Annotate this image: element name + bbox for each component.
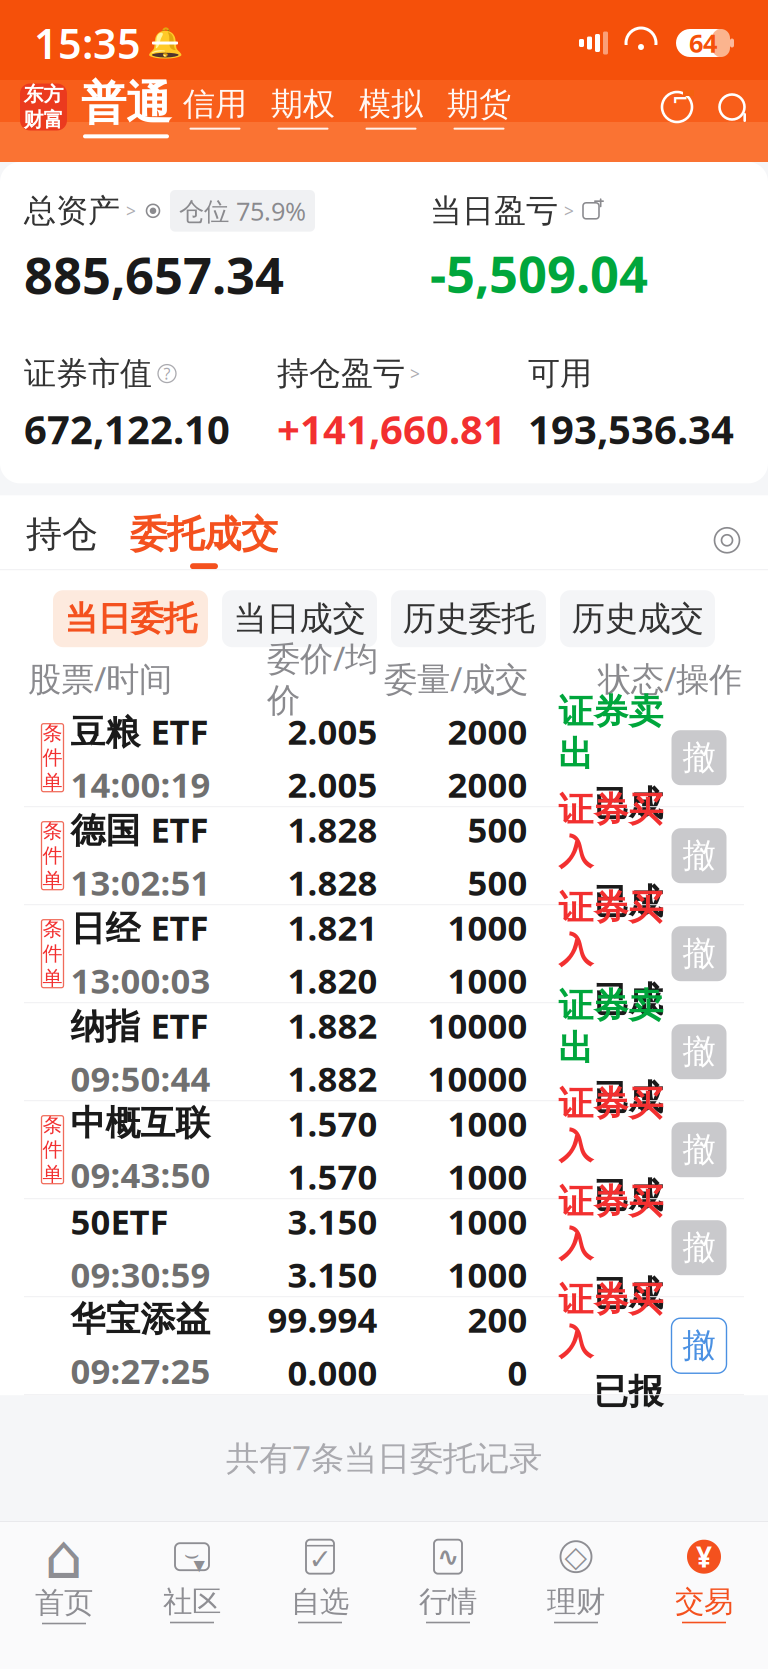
staticText: 09:30:59 bbox=[70, 1251, 210, 1297]
button[interactable]: 撤单 bbox=[671, 730, 726, 785]
staticText: 期权 bbox=[271, 84, 335, 124]
button[interactable]: Hide balance bbox=[142, 201, 164, 221]
staticText: 99.994 bbox=[267, 1296, 377, 1342]
staticText: 14:00:19 bbox=[70, 761, 210, 807]
staticText: 🔔 bbox=[146, 26, 183, 60]
button[interactable]: 持仓 bbox=[26, 512, 98, 568]
staticText: 1000 bbox=[447, 1153, 527, 1199]
button[interactable]: 条 bbox=[0, 905, 768, 1003]
button[interactable]: 撤单 bbox=[671, 828, 726, 883]
button[interactable]: ✓ bbox=[256, 1530, 384, 1630]
staticText: ◇ bbox=[564, 1540, 587, 1573]
button[interactable]: 纳指 ETF bbox=[0, 1003, 768, 1101]
staticText: 500 bbox=[467, 859, 527, 905]
staticText: 条 bbox=[42, 721, 62, 745]
button[interactable]: Search bbox=[716, 91, 748, 123]
staticText: ¥ bbox=[696, 1538, 712, 1575]
staticText: 已报 bbox=[593, 1370, 663, 1413]
button[interactable]: 模拟 bbox=[347, 84, 435, 130]
staticText: 普通 bbox=[81, 76, 171, 131]
button[interactable]: 历史成交 bbox=[560, 590, 715, 647]
button[interactable]: 信用 bbox=[171, 84, 259, 130]
staticText: 委量/成交 bbox=[384, 656, 528, 700]
button[interactable]: Refresh bbox=[660, 90, 694, 124]
button[interactable]: 条 bbox=[0, 807, 768, 905]
staticText: ✓ bbox=[308, 1543, 331, 1575]
staticText: 模拟 bbox=[359, 84, 423, 124]
staticText: 13:02:51 bbox=[70, 859, 210, 905]
button[interactable]: ¥ bbox=[640, 1530, 768, 1630]
staticText: 单 bbox=[42, 966, 62, 991]
staticText: 64 bbox=[689, 26, 717, 60]
button[interactable]: 撤单 bbox=[671, 1318, 726, 1373]
staticText: 已成 bbox=[593, 880, 663, 923]
button[interactable]: 普通 bbox=[81, 76, 171, 138]
staticText: 华宝添益 bbox=[70, 1298, 210, 1340]
staticText: 1.570 bbox=[287, 1153, 377, 1199]
staticText: 条 bbox=[42, 1113, 62, 1137]
staticText: ⌐ bbox=[672, 88, 689, 110]
button[interactable]: 普通 bbox=[81, 76, 171, 138]
staticText: 普通 bbox=[81, 76, 171, 131]
staticText: 15:35 bbox=[34, 16, 141, 70]
button[interactable]: 模拟 bbox=[347, 84, 435, 130]
button[interactable]: 期货 bbox=[435, 84, 523, 130]
staticText: 东方 bbox=[23, 82, 63, 106]
staticText: 理财 bbox=[547, 1584, 605, 1620]
staticText: 1000 bbox=[447, 957, 527, 1003]
button[interactable]: 当日委托 bbox=[53, 590, 208, 647]
staticText: 交易 bbox=[675, 1584, 733, 1620]
button[interactable]: 期权 bbox=[259, 84, 347, 130]
button[interactable]: 历史委托 bbox=[391, 590, 546, 647]
staticText: 证券买入 bbox=[558, 788, 663, 873]
staticText: 可用 bbox=[528, 354, 592, 393]
staticText: ▾ bbox=[193, 1552, 204, 1577]
staticText: 🔔 bbox=[146, 26, 183, 60]
staticText: 状态/操作 bbox=[598, 656, 742, 700]
staticText: 持仓盈亏 bbox=[277, 354, 405, 393]
button[interactable]: Refresh bbox=[660, 90, 694, 124]
staticText: 撤 bbox=[682, 1129, 715, 1170]
button[interactable]: 条 bbox=[0, 1101, 768, 1199]
button[interactable]: 当日成交 bbox=[222, 590, 377, 647]
staticText: > bbox=[126, 199, 136, 222]
staticText: 1000 bbox=[447, 904, 527, 950]
button[interactable]: ◇ bbox=[512, 1530, 640, 1630]
button[interactable]: 撤单 bbox=[671, 926, 726, 981]
button[interactable]: 50ETF bbox=[0, 1199, 768, 1297]
button[interactable]: 撤单 bbox=[671, 1122, 726, 1177]
staticText: 历史成交 bbox=[571, 598, 703, 639]
staticText: 885,657.34 bbox=[24, 241, 284, 308]
staticText: 单 bbox=[42, 1162, 62, 1187]
staticText: 1.882 bbox=[287, 1055, 377, 1101]
button[interactable]: 期权 bbox=[259, 84, 347, 130]
staticText: 共有7条当日委托记录 bbox=[226, 1435, 542, 1479]
staticText: 模拟 bbox=[359, 84, 423, 124]
staticText: 当日成交 bbox=[233, 598, 365, 639]
button[interactable]: ⌣ bbox=[128, 1530, 256, 1630]
button[interactable]: 条 bbox=[0, 709, 768, 807]
staticText: 已成 bbox=[593, 782, 663, 825]
button[interactable]: ∿ bbox=[384, 1530, 512, 1630]
button[interactable]: 撤单 bbox=[671, 1024, 726, 1079]
staticText: 条 bbox=[42, 917, 62, 941]
staticText: 1.828 bbox=[287, 859, 377, 905]
button[interactable]: 华宝添益 bbox=[0, 1297, 768, 1395]
staticText: 证券卖出 bbox=[558, 984, 663, 1069]
staticText: 10000 bbox=[427, 1002, 527, 1048]
staticText: ⌂ bbox=[44, 1522, 83, 1591]
button[interactable]: 撤单 bbox=[671, 1220, 726, 1275]
button[interactable]: Settings bbox=[712, 525, 742, 555]
button[interactable]: 委托成交 bbox=[130, 511, 278, 569]
button[interactable]: 期货 bbox=[435, 84, 523, 130]
staticText: -5,509.04 bbox=[430, 239, 648, 307]
button[interactable]: Search bbox=[716, 91, 748, 123]
staticText: > bbox=[410, 362, 420, 385]
button[interactable]: 信用 bbox=[171, 84, 259, 130]
button[interactable]: ⌂ bbox=[0, 1530, 128, 1630]
staticText: ⌣ bbox=[184, 1543, 200, 1567]
staticText: 200 bbox=[467, 1296, 527, 1342]
staticText: 证券卖出 bbox=[558, 690, 663, 775]
staticText: 件 bbox=[42, 745, 62, 770]
button[interactable]: Share bbox=[580, 200, 602, 222]
